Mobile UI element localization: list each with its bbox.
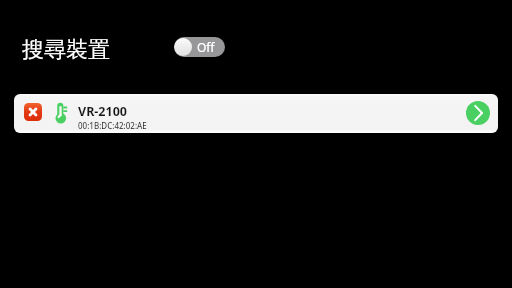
staticText: 00:1B:DC:42:02:AE xyxy=(78,120,147,131)
button[interactable]: Off xyxy=(174,37,225,57)
button[interactable]: Remove device xyxy=(24,103,42,121)
staticText: VR-2100 xyxy=(78,103,127,120)
staticText: Off xyxy=(197,39,215,55)
button[interactable]: Remove device xyxy=(14,94,498,133)
staticText: 搜尋裝置 xyxy=(22,36,110,64)
button[interactable]: Open device xyxy=(466,101,490,125)
